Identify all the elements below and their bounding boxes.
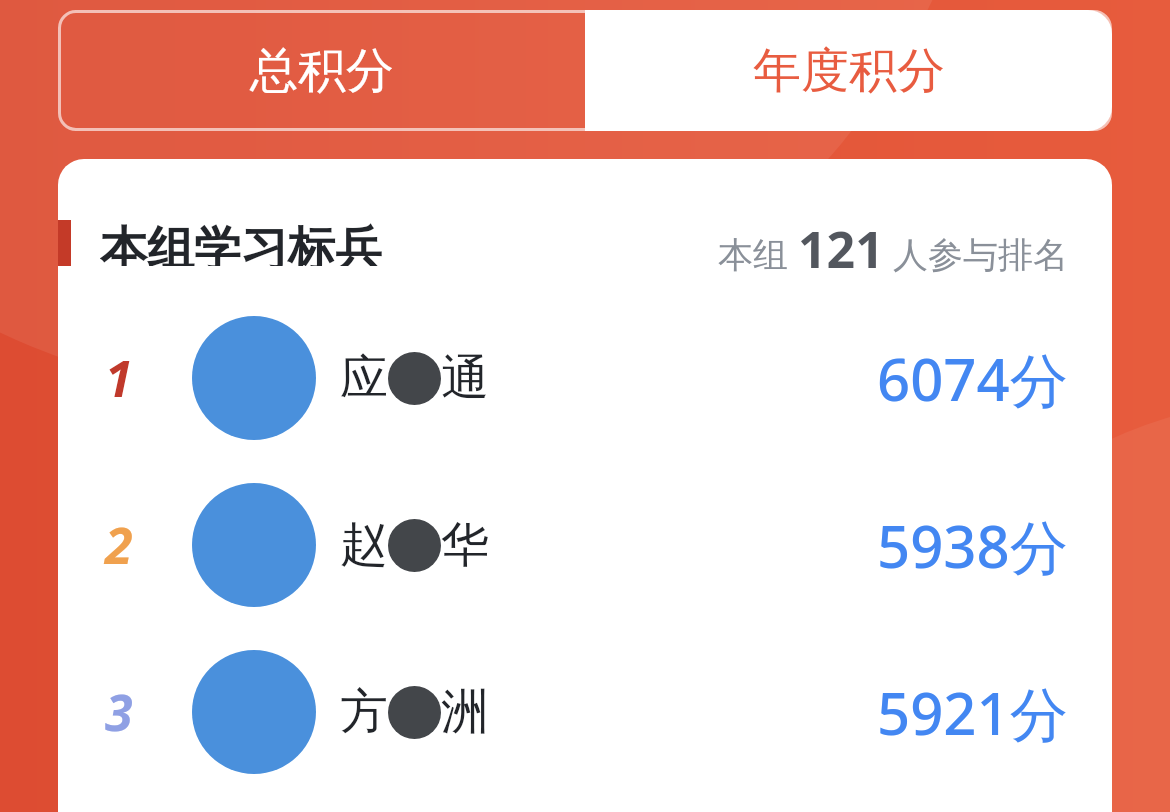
button[interactable]: 总积分 xyxy=(58,10,585,131)
staticText: 总积分 xyxy=(250,41,394,101)
staticText: 6074分 xyxy=(877,339,1068,418)
staticText: 5938分 xyxy=(877,506,1068,585)
staticText: 121 xyxy=(798,215,884,283)
staticText: 1 xyxy=(105,344,133,412)
button[interactable]: 3 xyxy=(58,650,1112,774)
staticText: 赵 xyxy=(340,515,388,575)
staticText: 本组学习标兵 xyxy=(100,220,382,266)
staticText: 本组 xyxy=(718,230,798,278)
button[interactable]: 年度积分 xyxy=(585,10,1112,131)
staticText: 2 xyxy=(105,511,133,579)
button[interactable]: 1 xyxy=(58,316,1112,440)
staticText: 3 xyxy=(105,678,133,746)
staticText: 洲 xyxy=(441,682,489,742)
button[interactable]: 2 xyxy=(58,483,1112,607)
staticText: 通 xyxy=(441,348,489,408)
staticText: 应 xyxy=(340,348,388,408)
staticText: 年度积分 xyxy=(753,41,945,101)
staticText: 5921分 xyxy=(877,673,1068,752)
staticText: 华 xyxy=(441,515,489,575)
staticText: 人参与排名 xyxy=(884,230,1069,278)
staticText: 方 xyxy=(340,682,388,742)
